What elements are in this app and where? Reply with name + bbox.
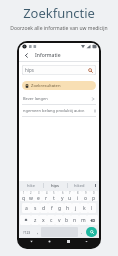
staticText: y bbox=[61, 195, 64, 201]
staticText: j bbox=[75, 205, 77, 212]
button[interactable]: v bbox=[55, 215, 63, 225]
button[interactable]: , bbox=[34, 227, 41, 237]
button[interactable]: Hide keyboard bbox=[83, 238, 90, 245]
staticText: 2 bbox=[30, 191, 32, 195]
button[interactable]: More suggestions bbox=[91, 181, 99, 190]
staticText: hiked bbox=[74, 183, 85, 188]
button[interactable]: 8 bbox=[74, 191, 82, 201]
staticText: s bbox=[34, 205, 37, 212]
staticText: x bbox=[42, 217, 45, 224]
button[interactable]: 6 bbox=[58, 191, 66, 201]
staticText: z bbox=[34, 217, 37, 224]
button[interactable]: . bbox=[78, 227, 85, 237]
staticText: 4 bbox=[46, 191, 48, 195]
button[interactable]: c bbox=[47, 215, 55, 225]
button[interactable]: 2 bbox=[27, 191, 34, 201]
button[interactable]: m bbox=[79, 215, 87, 225]
button[interactable]: ?123 bbox=[20, 227, 34, 237]
button[interactable]: hike bbox=[19, 181, 43, 190]
button[interactable]: 5 bbox=[50, 191, 58, 201]
button[interactable]: g bbox=[56, 203, 64, 213]
staticText: ?123 bbox=[23, 230, 31, 235]
staticText: Doorzoek alle informatie van uw medicijn bbox=[0, 25, 118, 32]
staticText: 8 bbox=[77, 191, 79, 195]
button[interactable]: 1 bbox=[20, 191, 27, 201]
staticText: k bbox=[83, 205, 86, 212]
button[interactable]: b bbox=[63, 215, 71, 225]
button[interactable]: z bbox=[31, 215, 39, 225]
staticText: i bbox=[77, 195, 79, 201]
other: Search bbox=[87, 67, 93, 73]
staticText: e bbox=[37, 195, 40, 201]
staticText: . bbox=[81, 229, 83, 235]
staticText: 5 bbox=[53, 191, 55, 195]
staticText: hips bbox=[25, 67, 34, 73]
staticText: Zoekfunctie bbox=[0, 4, 118, 22]
button[interactable]: k bbox=[80, 203, 88, 213]
button[interactable]: Search bbox=[86, 227, 97, 237]
staticText: 6 bbox=[62, 191, 64, 195]
button[interactable]: a bbox=[22, 203, 31, 213]
staticText: , bbox=[37, 229, 39, 235]
staticText: 3 bbox=[38, 191, 40, 195]
staticText: 0 bbox=[93, 191, 95, 195]
staticText: 7 bbox=[69, 191, 71, 195]
button[interactable]: Back bbox=[28, 238, 35, 245]
button[interactable]: Back bbox=[22, 51, 31, 60]
staticText: w bbox=[29, 195, 33, 201]
button[interactable]: 0 bbox=[90, 191, 98, 201]
button[interactable]: f bbox=[48, 203, 56, 213]
staticText: Informatie bbox=[35, 52, 61, 59]
staticText: q bbox=[22, 195, 26, 201]
button[interactable]: d bbox=[40, 203, 48, 213]
button[interactable]: x bbox=[39, 215, 47, 225]
staticText: 9 bbox=[85, 191, 87, 195]
staticText: Zoekresultaten bbox=[31, 83, 61, 89]
staticText: n bbox=[73, 217, 77, 224]
staticText: ngemeen belang produktij autor. tijdens? bbox=[23, 108, 95, 113]
button[interactable]: Backspace bbox=[87, 215, 98, 225]
button[interactable]: 7 bbox=[66, 191, 74, 201]
button[interactable]: Recents bbox=[65, 238, 72, 245]
button[interactable]: hips bbox=[44, 181, 67, 190]
staticText: l bbox=[91, 205, 93, 212]
staticText: g bbox=[58, 205, 62, 212]
button[interactable]: Home bbox=[46, 238, 53, 245]
button[interactable]: 9 bbox=[82, 191, 90, 201]
button[interactable]: l bbox=[88, 203, 96, 213]
staticText: h bbox=[66, 205, 70, 212]
button[interactable]: s bbox=[31, 203, 40, 213]
button[interactable]: Shift bbox=[20, 215, 31, 225]
button[interactable]: n bbox=[71, 215, 79, 225]
staticText: f bbox=[51, 205, 53, 212]
staticText: Bever langen bbox=[23, 96, 48, 101]
staticText: a bbox=[25, 205, 28, 212]
button[interactable]: hips bbox=[22, 65, 96, 75]
button[interactable]: Zoekresultaten bbox=[22, 81, 96, 90]
button[interactable]: ngemeen belang produktij autor. tijdens? bbox=[19, 105, 99, 116]
button[interactable]: hiked bbox=[68, 181, 91, 190]
button[interactable]: Bever langen bbox=[19, 93, 99, 104]
staticText: c bbox=[50, 217, 53, 224]
staticText: u bbox=[68, 195, 72, 201]
staticText: b bbox=[65, 217, 69, 224]
staticText: t bbox=[53, 195, 55, 201]
staticText: m bbox=[81, 217, 86, 224]
staticText: 1 bbox=[23, 191, 25, 195]
button[interactable]: h bbox=[64, 203, 72, 213]
button[interactable]: j bbox=[72, 203, 80, 213]
staticText: o bbox=[84, 195, 88, 201]
staticText: v bbox=[58, 217, 61, 224]
staticText: hips bbox=[51, 183, 60, 188]
staticText: hike bbox=[27, 183, 35, 188]
button[interactable]: 4 bbox=[42, 191, 50, 201]
button[interactable]: 3 bbox=[34, 191, 42, 201]
staticText: p bbox=[92, 195, 96, 201]
staticText: r bbox=[45, 195, 48, 201]
staticText: d bbox=[42, 205, 46, 212]
